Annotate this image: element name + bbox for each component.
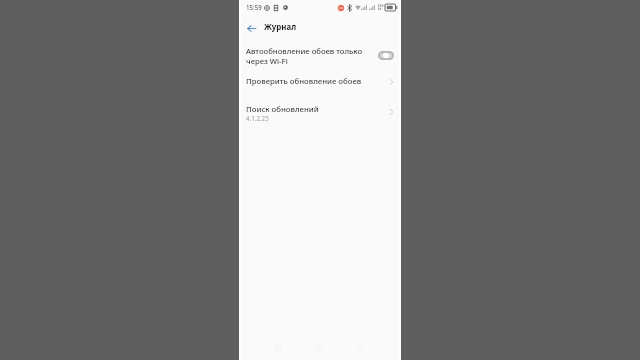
button[interactable]: Проверить обновление обоев xyxy=(239,72,401,92)
staticText: Проверить обновление обоев xyxy=(246,76,362,87)
button[interactable]: Автообновление обоев только через Wi-Fi xyxy=(239,41,401,69)
button[interactable]: Поиск обновлений xyxy=(239,99,401,123)
staticText: 4.1.2.25 xyxy=(246,114,269,122)
button[interactable]: Назад xyxy=(241,18,261,38)
staticText: Автообновление обоев только через Wi-Fi xyxy=(246,46,363,66)
staticText: Журнал xyxy=(264,22,297,33)
staticText: Поиск обновлений xyxy=(246,104,319,115)
button[interactable]: Автообновление обоев только через Wi-Fi xyxy=(374,45,397,65)
staticText: 15:59 xyxy=(246,3,262,11)
